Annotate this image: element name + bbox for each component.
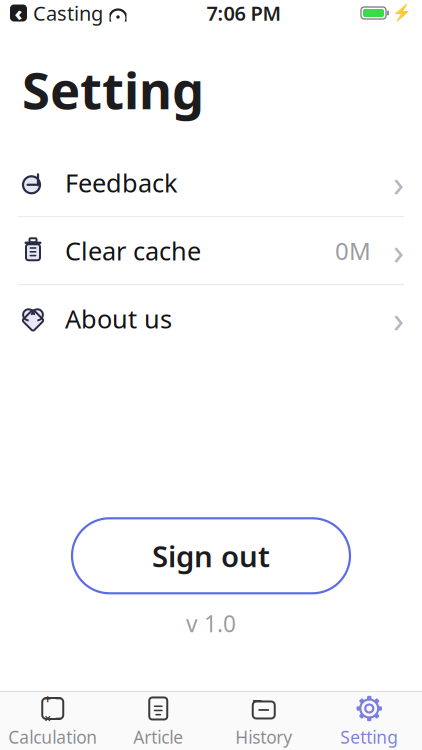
staticText: 0M — [335, 235, 371, 267]
staticText: History — [235, 725, 292, 748]
staticText: › — [393, 295, 404, 343]
button[interactable]: + — [0, 687, 105, 750]
button[interactable]: Sign out — [72, 518, 350, 593]
button[interactable]: About us — [0, 285, 422, 352]
staticText: Casting — [33, 0, 103, 26]
staticText: Feedback — [65, 166, 178, 200]
staticText: Setting — [22, 56, 204, 123]
staticText: Clear cache — [65, 234, 201, 268]
staticText: › — [393, 227, 404, 275]
staticText: Setting — [340, 725, 398, 748]
button[interactable]: Feedback — [0, 149, 422, 216]
button[interactable]: Setting — [316, 687, 422, 750]
staticText: ⚡ — [392, 4, 412, 22]
staticText: + — [44, 691, 51, 706]
staticText: × — [44, 710, 51, 726]
staticText: ‹ — [14, 0, 22, 26]
button[interactable]: History — [211, 687, 316, 750]
staticText: About us — [65, 302, 172, 336]
staticText: v 1.0 — [186, 608, 236, 638]
button[interactable]: Clear cache — [0, 217, 422, 284]
staticText: › — [393, 159, 404, 207]
button[interactable]: Article — [105, 687, 211, 750]
staticText: Calculation — [8, 725, 97, 748]
staticText: Article — [133, 725, 183, 748]
staticText: 7:06 PM — [206, 0, 281, 26]
staticText: Sign out — [152, 536, 270, 575]
